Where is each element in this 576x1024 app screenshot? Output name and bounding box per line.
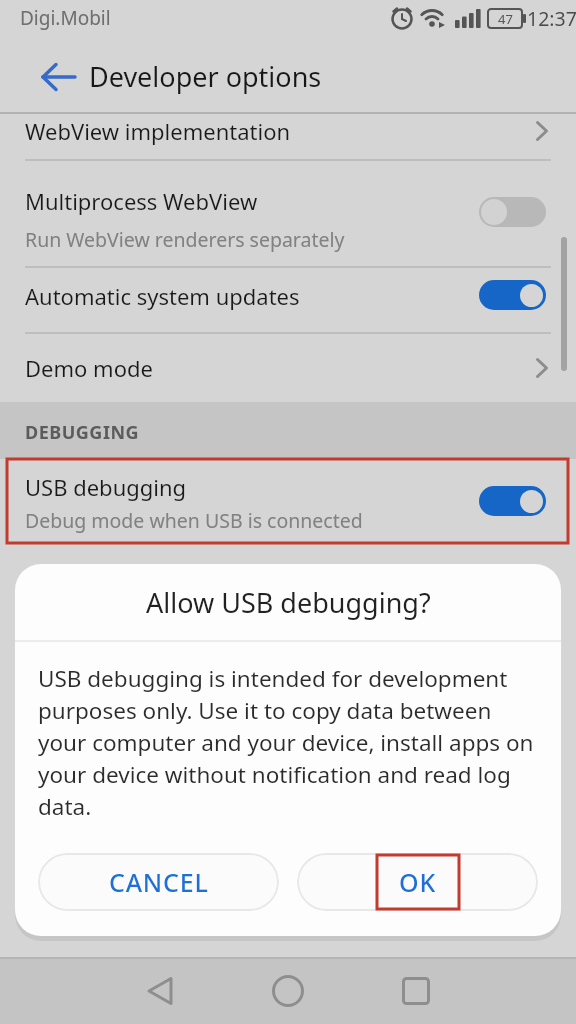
- staticText: USB debugging is intended for developmen…: [38, 663, 534, 822]
- staticText: Developer options: [89, 58, 322, 95]
- button[interactable]: [96, 957, 224, 1024]
- staticText: OK: [399, 865, 437, 899]
- staticText: Debug mode when USB is connected: [25, 507, 363, 534]
- button[interactable]: [479, 197, 546, 227]
- staticText: Allow USB debugging?: [146, 584, 431, 621]
- staticText: Automatic system updates: [25, 281, 300, 311]
- staticText: DEBUGGING: [25, 420, 140, 445]
- button[interactable]: [0, 114, 576, 160]
- staticText: Demo mode: [25, 353, 153, 383]
- button[interactable]: [479, 486, 546, 516]
- button[interactable]: [224, 957, 352, 1024]
- staticText: 12:37: [527, 5, 576, 32]
- staticText: WebView implementation: [25, 116, 291, 146]
- staticText: CANCEL: [109, 865, 209, 899]
- button[interactable]: [479, 280, 546, 310]
- button[interactable]: [40, 62, 78, 92]
- button[interactable]: OK: [297, 853, 538, 911]
- staticText: Multiprocess WebView: [25, 186, 258, 216]
- staticText: USB debugging: [25, 472, 187, 502]
- button[interactable]: [0, 459, 576, 545]
- button[interactable]: [0, 160, 576, 266]
- button[interactable]: CANCEL: [38, 853, 279, 911]
- button[interactable]: [0, 267, 576, 333]
- staticText: 47: [498, 10, 513, 28]
- staticText: Digi.Mobil: [20, 5, 111, 31]
- button[interactable]: [352, 957, 480, 1024]
- button[interactable]: [0, 333, 576, 402]
- staticText: Run WebView renderers separately: [25, 226, 345, 253]
